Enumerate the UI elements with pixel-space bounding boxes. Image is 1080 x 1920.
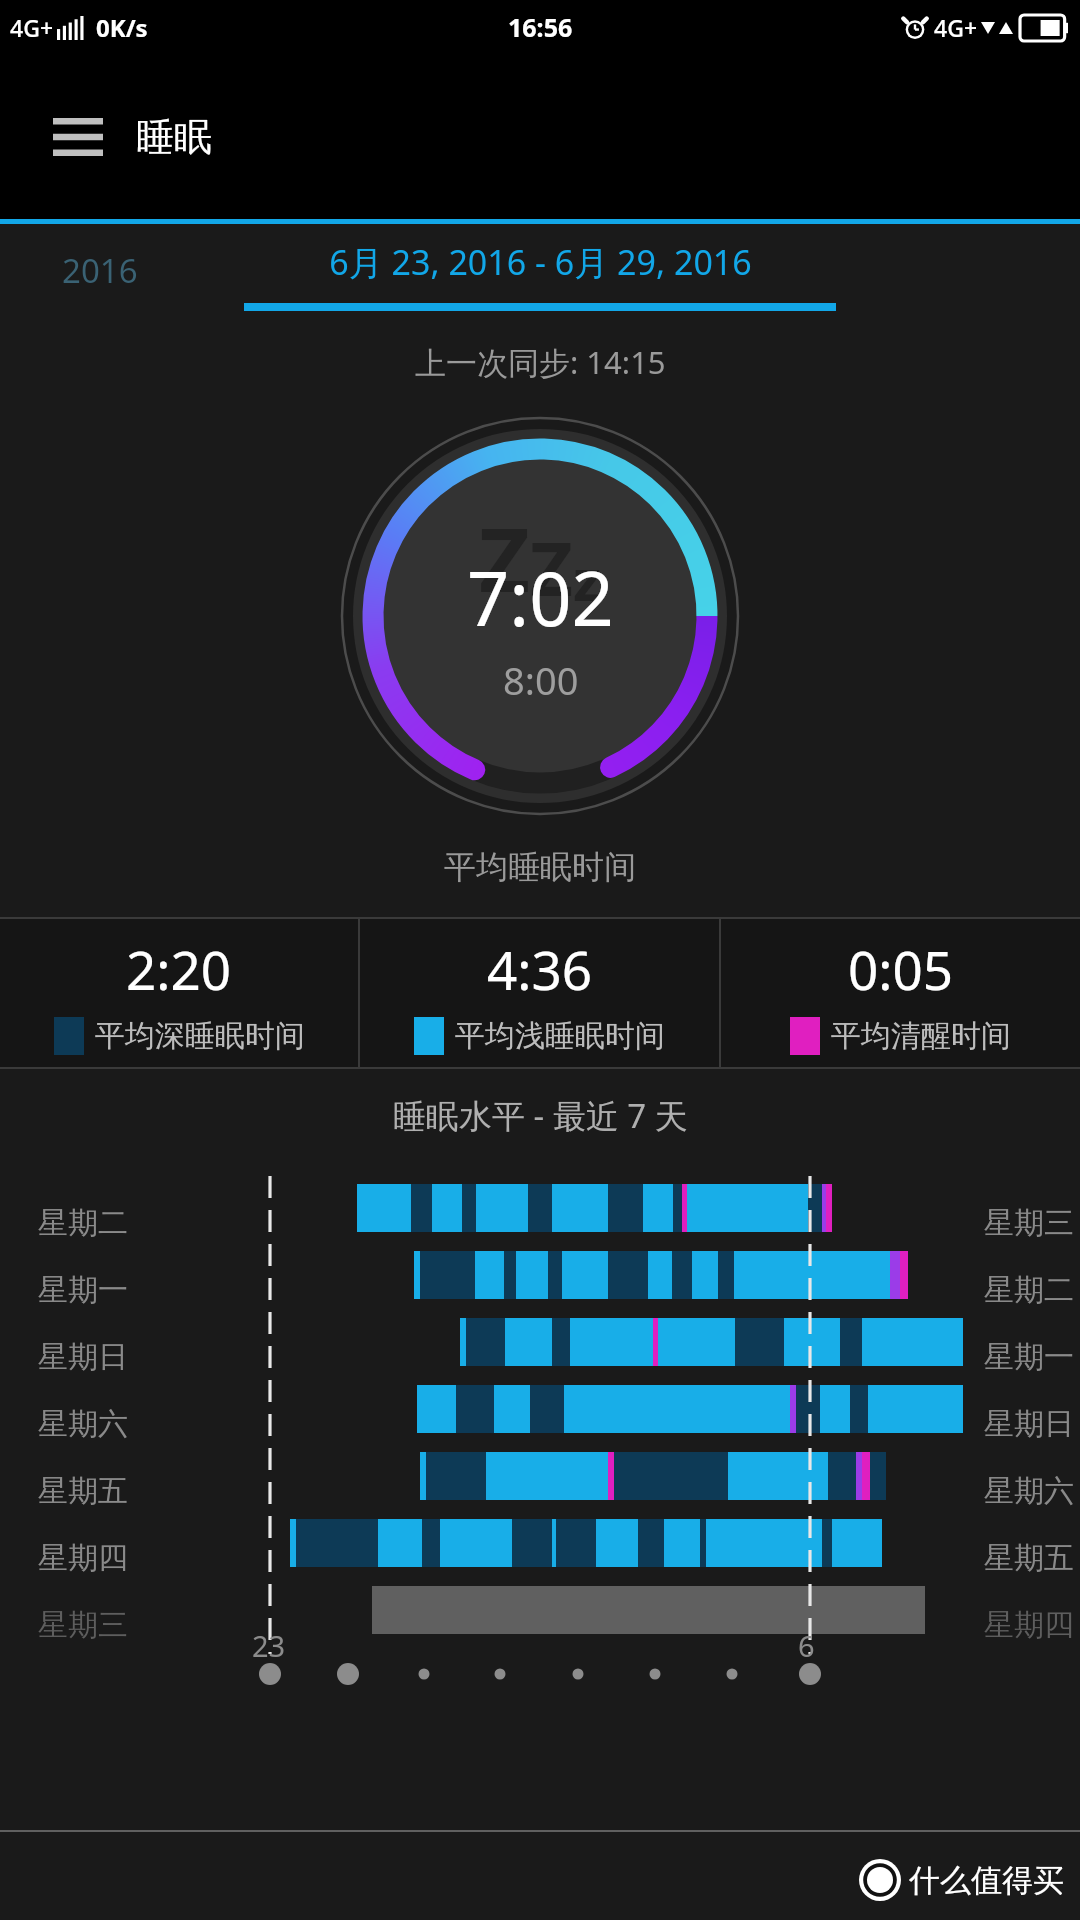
staticText: 平均睡眠时间 — [444, 847, 636, 887]
staticText: 4:36 — [487, 933, 593, 1005]
staticText: 星期日 — [984, 1405, 1074, 1443]
button[interactable]: 2:20 — [0, 917, 358, 1069]
staticText: 上一次同步: 14:15 — [415, 341, 666, 383]
staticText: 23 — [252, 1626, 286, 1665]
staticText: 星期一 — [38, 1271, 128, 1309]
staticText: 星期五 — [38, 1472, 128, 1510]
staticText: 星期一 — [984, 1338, 1074, 1376]
staticText: 7:02 — [467, 547, 614, 648]
staticText: 4G+ — [934, 12, 978, 43]
staticText: 平均深睡眠时间 — [95, 1017, 305, 1055]
staticText: 0:05 — [848, 933, 954, 1005]
staticText: 4G+ — [10, 12, 54, 43]
button[interactable]: 2016 — [0, 224, 200, 317]
staticText: 0K/s — [96, 11, 148, 44]
staticText: Z — [479, 498, 530, 618]
staticText: 什么值得买 — [909, 1861, 1064, 1900]
staticText: 2:20 — [126, 933, 232, 1005]
button[interactable]: 4:36 — [360, 917, 719, 1069]
button[interactable]: Menu — [34, 93, 122, 181]
staticText: 6月 23, 2016 - 6月 29, 2016 — [329, 239, 752, 285]
staticText: 星期四 — [38, 1539, 128, 1577]
staticText: 星期三 — [984, 1204, 1074, 1242]
staticText: 睡眠 — [136, 113, 212, 161]
staticText: z — [573, 539, 602, 618]
staticText: 星期三 — [38, 1606, 128, 1644]
staticText: 2016 — [62, 248, 138, 293]
staticText: Z — [530, 517, 573, 618]
staticText: 平均浅睡眠时间 — [455, 1017, 665, 1055]
staticText: 星期五 — [984, 1539, 1074, 1577]
staticText: 星期四 — [984, 1606, 1074, 1644]
button[interactable]: 0:05 — [721, 917, 1080, 1069]
staticText: 8:00 — [503, 654, 579, 706]
staticText: 6 — [798, 1626, 815, 1665]
staticText: 16:56 — [508, 10, 573, 44]
staticText: 平均清醒时间 — [831, 1017, 1011, 1055]
staticText: 星期六 — [38, 1405, 128, 1443]
staticText: 星期二 — [984, 1271, 1074, 1309]
staticText: 星期日 — [38, 1338, 128, 1376]
staticText: 星期二 — [38, 1204, 128, 1242]
staticText: 星期六 — [984, 1472, 1074, 1510]
button[interactable]: 6月 23, 2016 - 6月 29, 2016 — [200, 224, 880, 317]
staticText: 睡眠水平 - 最近 7 天 — [393, 1093, 688, 1138]
